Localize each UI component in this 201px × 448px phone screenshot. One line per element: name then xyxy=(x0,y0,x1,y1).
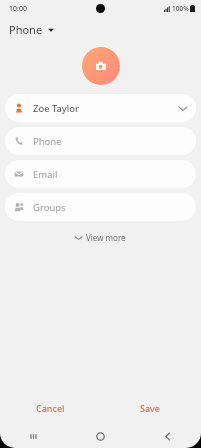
button[interactable]: Phone xyxy=(0,17,201,42)
button[interactable]: Email xyxy=(5,160,196,188)
staticText: View more xyxy=(86,232,126,243)
staticText: Phone xyxy=(9,22,43,37)
button[interactable]: Home xyxy=(67,424,134,448)
staticText: Groups xyxy=(33,201,66,214)
button[interactable]: Groups xyxy=(5,193,196,221)
staticText: 10:00 xyxy=(9,4,27,14)
staticText: Cancel xyxy=(36,402,65,414)
staticText: Save xyxy=(140,402,161,414)
button[interactable]: Phone xyxy=(5,127,196,155)
button[interactable]: Save xyxy=(100,396,201,420)
button[interactable]: Cancel xyxy=(0,396,100,420)
button[interactable]: View more xyxy=(67,228,134,247)
button[interactable]: Back xyxy=(134,424,201,448)
staticText: Phone xyxy=(33,135,62,148)
button[interactable]: Change contact photo xyxy=(82,47,120,85)
button[interactable]: Zoe Taylor xyxy=(5,94,196,122)
button[interactable]: Recent apps xyxy=(0,424,67,448)
staticText: Zoe Taylor xyxy=(33,102,79,115)
staticText: Email xyxy=(33,168,58,181)
staticText: 100% xyxy=(172,4,189,13)
